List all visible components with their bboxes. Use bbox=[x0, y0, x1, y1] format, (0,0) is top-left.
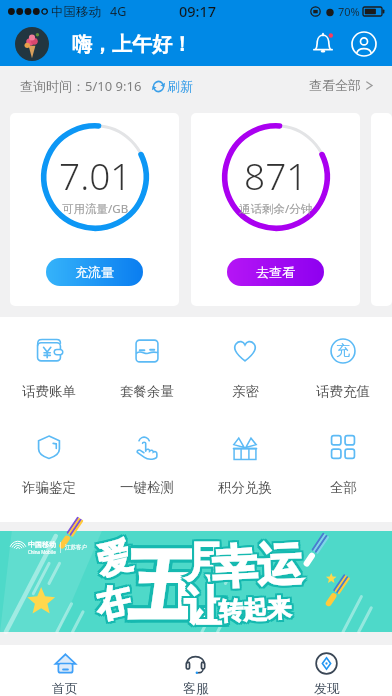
staticText: 让 bbox=[186, 583, 228, 636]
staticText: 爱 bbox=[90, 534, 136, 586]
staticText: 话费充值 bbox=[316, 383, 370, 400]
staticText: 幸运 bbox=[209, 534, 301, 595]
staticText: 让 bbox=[184, 583, 226, 636]
button[interactable]: 首页 bbox=[0, 645, 130, 696]
staticText: 让 bbox=[182, 579, 224, 632]
staticText: 幸运 bbox=[213, 536, 305, 597]
button[interactable]: 话费账单 bbox=[0, 338, 98, 400]
staticText: 积分兑换 bbox=[218, 479, 272, 496]
staticText: 在 bbox=[91, 576, 137, 628]
staticText: 在 bbox=[91, 574, 137, 626]
staticText: 幸运 bbox=[213, 538, 305, 599]
staticText: 去查看 bbox=[256, 264, 295, 280]
staticText: 转起来 bbox=[216, 595, 290, 629]
staticText: 全部 bbox=[330, 479, 357, 496]
staticText: 月 bbox=[186, 538, 228, 591]
staticText: 亲密 bbox=[232, 383, 259, 400]
button[interactable]: 刷新 bbox=[152, 78, 193, 94]
staticText: 在 bbox=[93, 574, 139, 626]
staticText: 让 bbox=[182, 583, 224, 636]
button[interactable]: 亲密 bbox=[196, 338, 294, 400]
staticText: 让 bbox=[182, 581, 224, 634]
staticText: 幸运 bbox=[211, 538, 303, 599]
button[interactable]: 充 bbox=[294, 338, 392, 400]
button[interactable]: 套餐余量 bbox=[98, 338, 196, 400]
button[interactable]: 7.01 bbox=[10, 113, 179, 306]
staticText: 五 bbox=[125, 540, 205, 641]
staticText: 月 bbox=[182, 534, 224, 587]
button[interactable]: Promotional banner bbox=[0, 531, 392, 632]
staticText: 在 bbox=[89, 576, 135, 628]
staticText: 7.01 bbox=[59, 150, 132, 200]
button[interactable]: Notifications bbox=[310, 31, 336, 57]
button[interactable]: 充流量 bbox=[46, 258, 143, 286]
button[interactable]: 一键检测 bbox=[98, 434, 196, 496]
staticText: 通话剩余/分钟 bbox=[239, 201, 313, 217]
staticText: 月 bbox=[186, 536, 228, 589]
staticText: 转起来 bbox=[216, 591, 290, 625]
button[interactable]: 发现 bbox=[261, 645, 392, 696]
staticText: 在 bbox=[89, 578, 135, 630]
button[interactable]: 查看全部 bbox=[309, 77, 374, 93]
staticText: 月 bbox=[184, 536, 226, 589]
staticText: 爱 bbox=[90, 530, 136, 582]
button[interactable]: 去查看 bbox=[227, 258, 324, 286]
staticText: 幸运 bbox=[209, 538, 301, 599]
staticText: 五 bbox=[128, 540, 208, 641]
staticText: 在 bbox=[93, 576, 139, 628]
staticText: 月 bbox=[182, 538, 224, 591]
staticText: 月 bbox=[184, 538, 226, 591]
button[interactable]: 积分兑换 bbox=[196, 434, 294, 496]
staticText: 五 bbox=[128, 537, 208, 638]
button[interactable]: 客服 bbox=[130, 645, 261, 696]
staticText: 月 bbox=[184, 534, 226, 587]
button[interactable]: 诈骗鉴定 bbox=[0, 434, 98, 496]
staticText: 转起来 bbox=[218, 593, 292, 627]
button[interactable]: 871 bbox=[191, 113, 360, 306]
staticText: 充 bbox=[336, 342, 350, 360]
staticText: 查看全部 bbox=[309, 77, 361, 93]
button[interactable]: Profile avatar bbox=[15, 27, 49, 61]
staticText: 转起来 bbox=[220, 595, 294, 629]
staticText: 让 bbox=[186, 581, 228, 634]
staticText: 4G bbox=[110, 3, 127, 20]
staticText: 幸运 bbox=[211, 534, 303, 595]
staticText: 首页 bbox=[52, 680, 78, 696]
staticText: China Mobile bbox=[28, 549, 56, 555]
staticText: 爱 bbox=[94, 534, 140, 586]
staticText: 爱 bbox=[94, 530, 140, 582]
staticText: 话费账单 bbox=[22, 383, 76, 400]
staticText: 爱 bbox=[94, 532, 140, 584]
staticText: 套餐余量 bbox=[120, 383, 174, 400]
staticText: 70% bbox=[338, 4, 360, 19]
button[interactable]: Account bbox=[351, 31, 377, 57]
staticText: 让 bbox=[186, 579, 228, 632]
staticText: 幸运 bbox=[213, 534, 305, 595]
staticText: 一键检测 bbox=[120, 479, 174, 496]
staticText: 爱 bbox=[92, 530, 138, 582]
staticText: 客服 bbox=[183, 680, 209, 696]
staticText: 转起来 bbox=[218, 595, 292, 629]
staticText: 发现 bbox=[314, 680, 340, 696]
staticText: 转起来 bbox=[220, 591, 294, 625]
staticText: 幸运 bbox=[211, 536, 303, 597]
staticText: 五 bbox=[131, 534, 211, 635]
staticText: 查询时间：5/10 9:16 bbox=[20, 77, 142, 95]
staticText: 爱 bbox=[90, 532, 136, 584]
staticText: 五 bbox=[128, 534, 208, 635]
staticText: 让 bbox=[184, 579, 226, 632]
staticText: 月 bbox=[182, 536, 224, 589]
staticText: 爱 bbox=[92, 534, 138, 586]
staticText: 让 bbox=[184, 581, 226, 634]
staticText: 871 bbox=[244, 150, 308, 200]
staticText: 充流量 bbox=[75, 264, 114, 280]
staticText: 五 bbox=[131, 537, 211, 638]
staticText: 幸运 bbox=[209, 536, 301, 597]
staticText: 刷新 bbox=[167, 78, 193, 94]
staticText: 嗨，上午好！ bbox=[72, 32, 192, 57]
staticText: 转起来 bbox=[220, 593, 294, 627]
staticText: 在 bbox=[91, 578, 137, 630]
staticText: 诈骗鉴定 bbox=[22, 479, 76, 496]
staticText: 转起来 bbox=[216, 593, 290, 627]
button[interactable]: 全部 bbox=[294, 434, 392, 496]
